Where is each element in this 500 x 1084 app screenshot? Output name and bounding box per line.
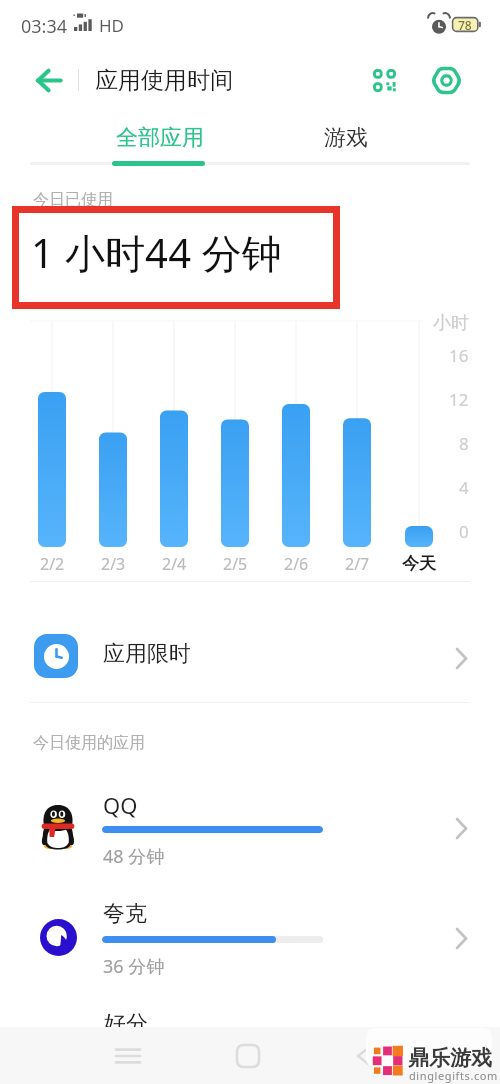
staticText: 2/7 [345, 553, 370, 575]
staticText: 8 [459, 432, 469, 455]
button[interactable]: 夸克 [0, 885, 500, 995]
staticText: 应用使用时间 [95, 66, 233, 95]
staticText: 36 分钟 [103, 954, 165, 979]
staticText: 2/6 [284, 553, 309, 575]
button[interactable]: 最近任务 [98, 1027, 158, 1084]
button[interactable]: 主页 [218, 1027, 278, 1084]
button[interactable]: 游戏 [245, 115, 447, 161]
button[interactable]: 全部应用 [59, 115, 261, 161]
staticText: 2/4 [162, 553, 187, 575]
staticText: 48 分钟 [103, 844, 165, 869]
staticText: 今天 [402, 553, 436, 574]
staticText: 1 小时44 分钟 [31, 225, 283, 280]
staticText: 0 [459, 520, 469, 543]
button[interactable]: 应用限时 [0, 582, 500, 702]
button[interactable]: 返回 [25, 57, 71, 103]
staticText: 78 [458, 17, 472, 32]
staticText: HD [99, 14, 125, 37]
staticText: 4 [459, 476, 469, 499]
staticText: QQ [103, 790, 138, 820]
button[interactable]: 设置 [423, 57, 469, 103]
staticText: 小时 [433, 312, 469, 335]
staticText: dinglegifts.com [409, 1068, 499, 1083]
staticText: 鼎乐游戏 [408, 1045, 492, 1071]
staticText: 2/2 [40, 553, 65, 575]
staticText: 12 [449, 388, 469, 411]
button[interactable]: 扫一扫 [361, 57, 407, 103]
staticText: 应用限时 [103, 640, 191, 668]
staticText: 好分 [104, 1010, 148, 1038]
staticText: 03:34 [21, 14, 68, 39]
staticText: 今日已使用 [33, 190, 113, 210]
staticText: 游戏 [324, 124, 368, 152]
staticText: 夸克 [103, 900, 147, 928]
staticText: 16 [449, 344, 469, 367]
staticText: 2/3 [101, 553, 126, 575]
staticText: 今日使用的应用 [33, 733, 145, 753]
staticText: 全部应用 [116, 124, 204, 152]
staticText: 2/5 [223, 553, 248, 575]
button[interactable]: QQ [0, 775, 500, 885]
button[interactable]: 返回 [334, 1027, 394, 1084]
